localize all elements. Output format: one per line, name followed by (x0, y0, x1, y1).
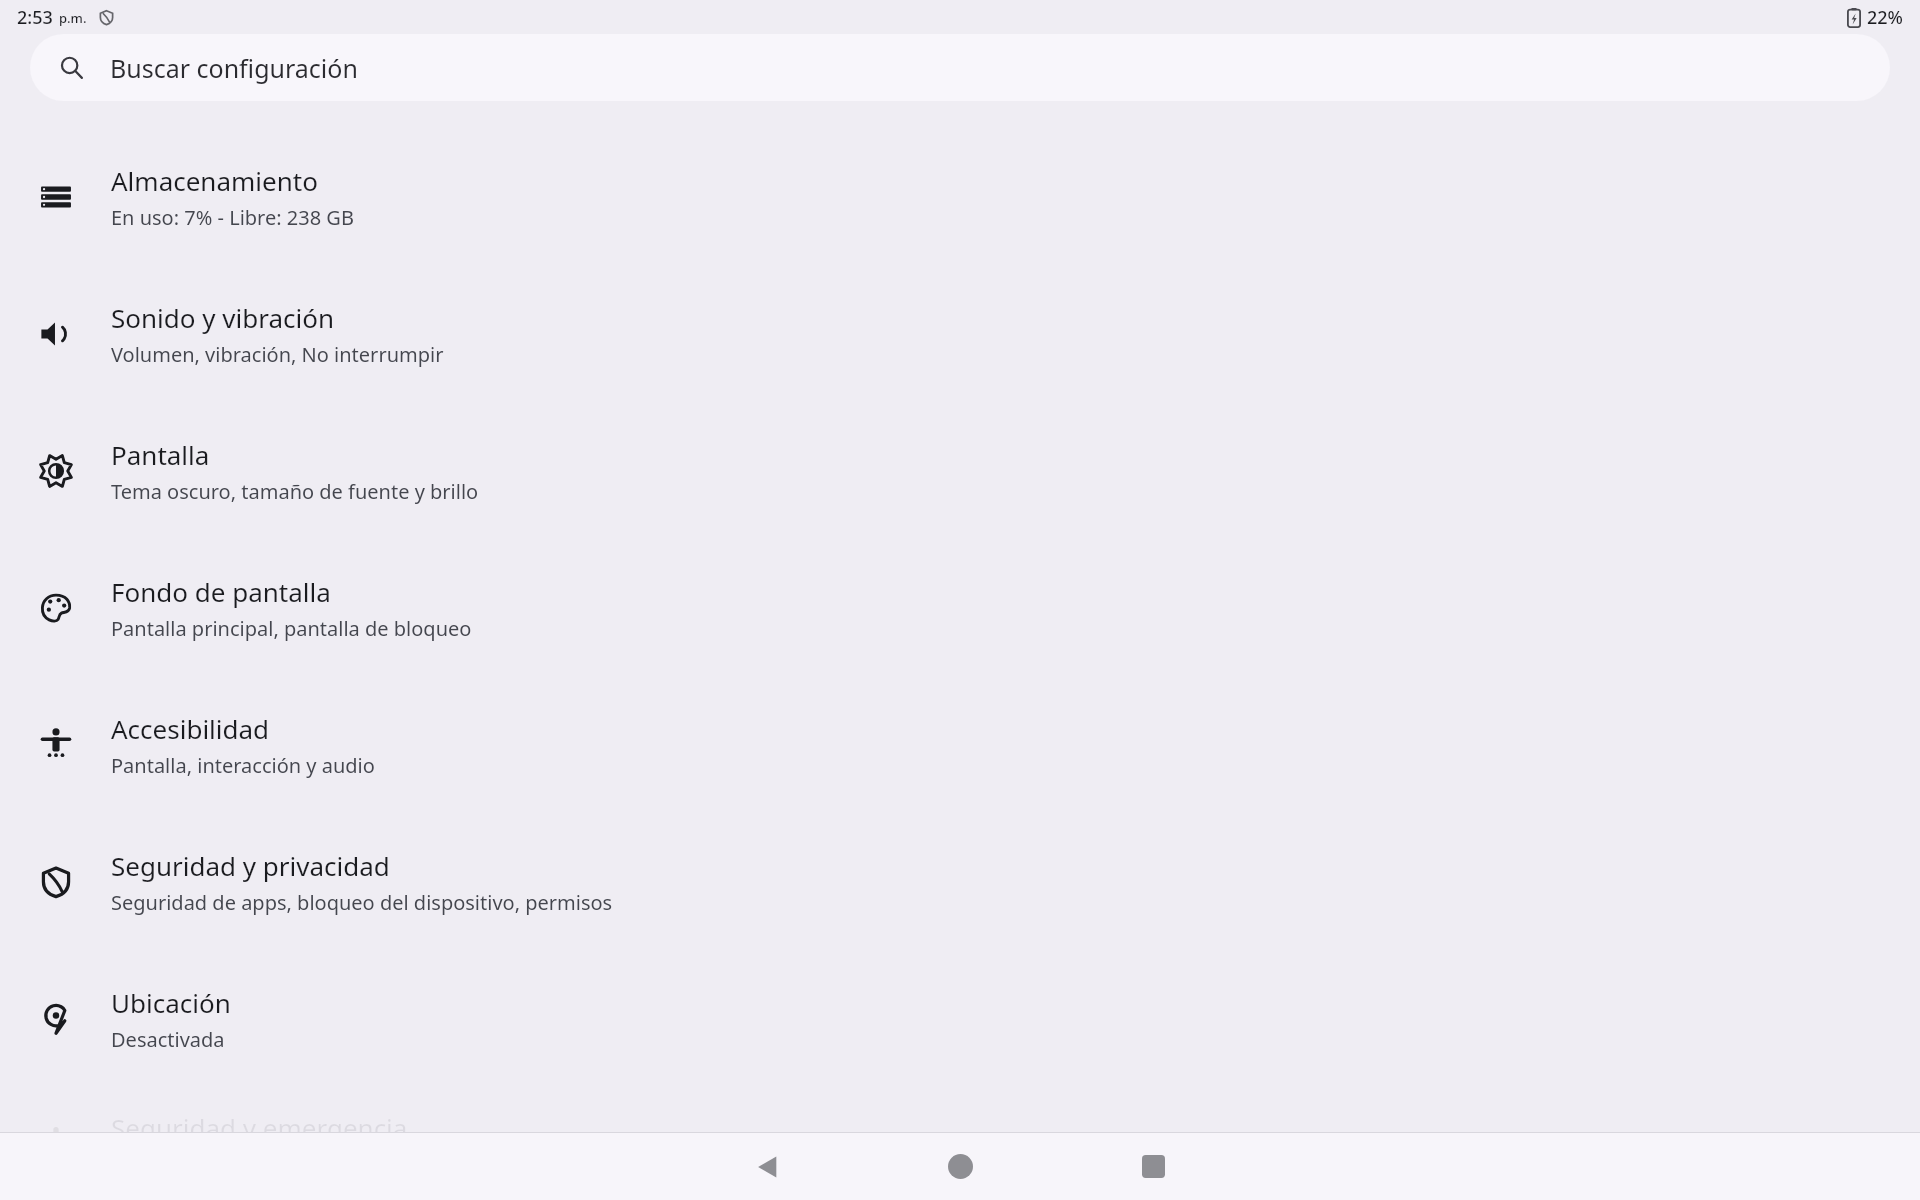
staticText: Ubicación (111, 985, 231, 1020)
staticText: 22% (1867, 5, 1903, 30)
staticText: Pantalla principal, pantalla de bloqueo (111, 615, 472, 642)
staticText: Pantalla (111, 437, 210, 472)
button[interactable]: Buscar configuración (30, 34, 1890, 101)
button[interactable]: Ubicación (0, 950, 1920, 1087)
button[interactable]: Recent apps (1057, 1133, 1250, 1200)
staticText: En uso: 7% - Libre: 238 GB (111, 204, 354, 231)
staticText: Pantalla, interacción y audio (111, 752, 375, 779)
button[interactable]: Seguridad y emergencia (0, 1087, 1920, 1200)
staticText: Buscar configuración (110, 51, 358, 85)
button[interactable]: Pantalla (0, 402, 1920, 539)
button[interactable]: Home (864, 1133, 1057, 1200)
staticText: Seguridad y emergencia (111, 1110, 408, 1145)
staticText: Tema oscuro, tamaño de fuente y brillo (111, 478, 479, 505)
button[interactable]: Sonido y vibración (0, 265, 1920, 402)
staticText: Seguridad de apps, bloqueo del dispositi… (111, 889, 613, 916)
button[interactable]: Almacenamiento (0, 128, 1920, 265)
staticText: Volumen, vibración, No interrumpir (111, 341, 444, 368)
staticText: Desactivada (111, 1026, 225, 1053)
staticText: Accesibilidad (111, 711, 270, 746)
button[interactable]: Seguridad y privacidad (0, 813, 1920, 950)
staticText: 2:53 (17, 5, 53, 30)
button[interactable]: Accesibilidad (0, 676, 1920, 813)
button[interactable]: Back (671, 1133, 864, 1200)
staticText: Seguridad y privacidad (111, 848, 390, 883)
button[interactable]: Fondo de pantalla (0, 539, 1920, 676)
staticText: Sonido y vibración (111, 300, 334, 335)
staticText: Almacenamiento (111, 163, 318, 198)
staticText: Fondo de pantalla (111, 574, 331, 609)
staticText: p.m. (59, 9, 87, 27)
